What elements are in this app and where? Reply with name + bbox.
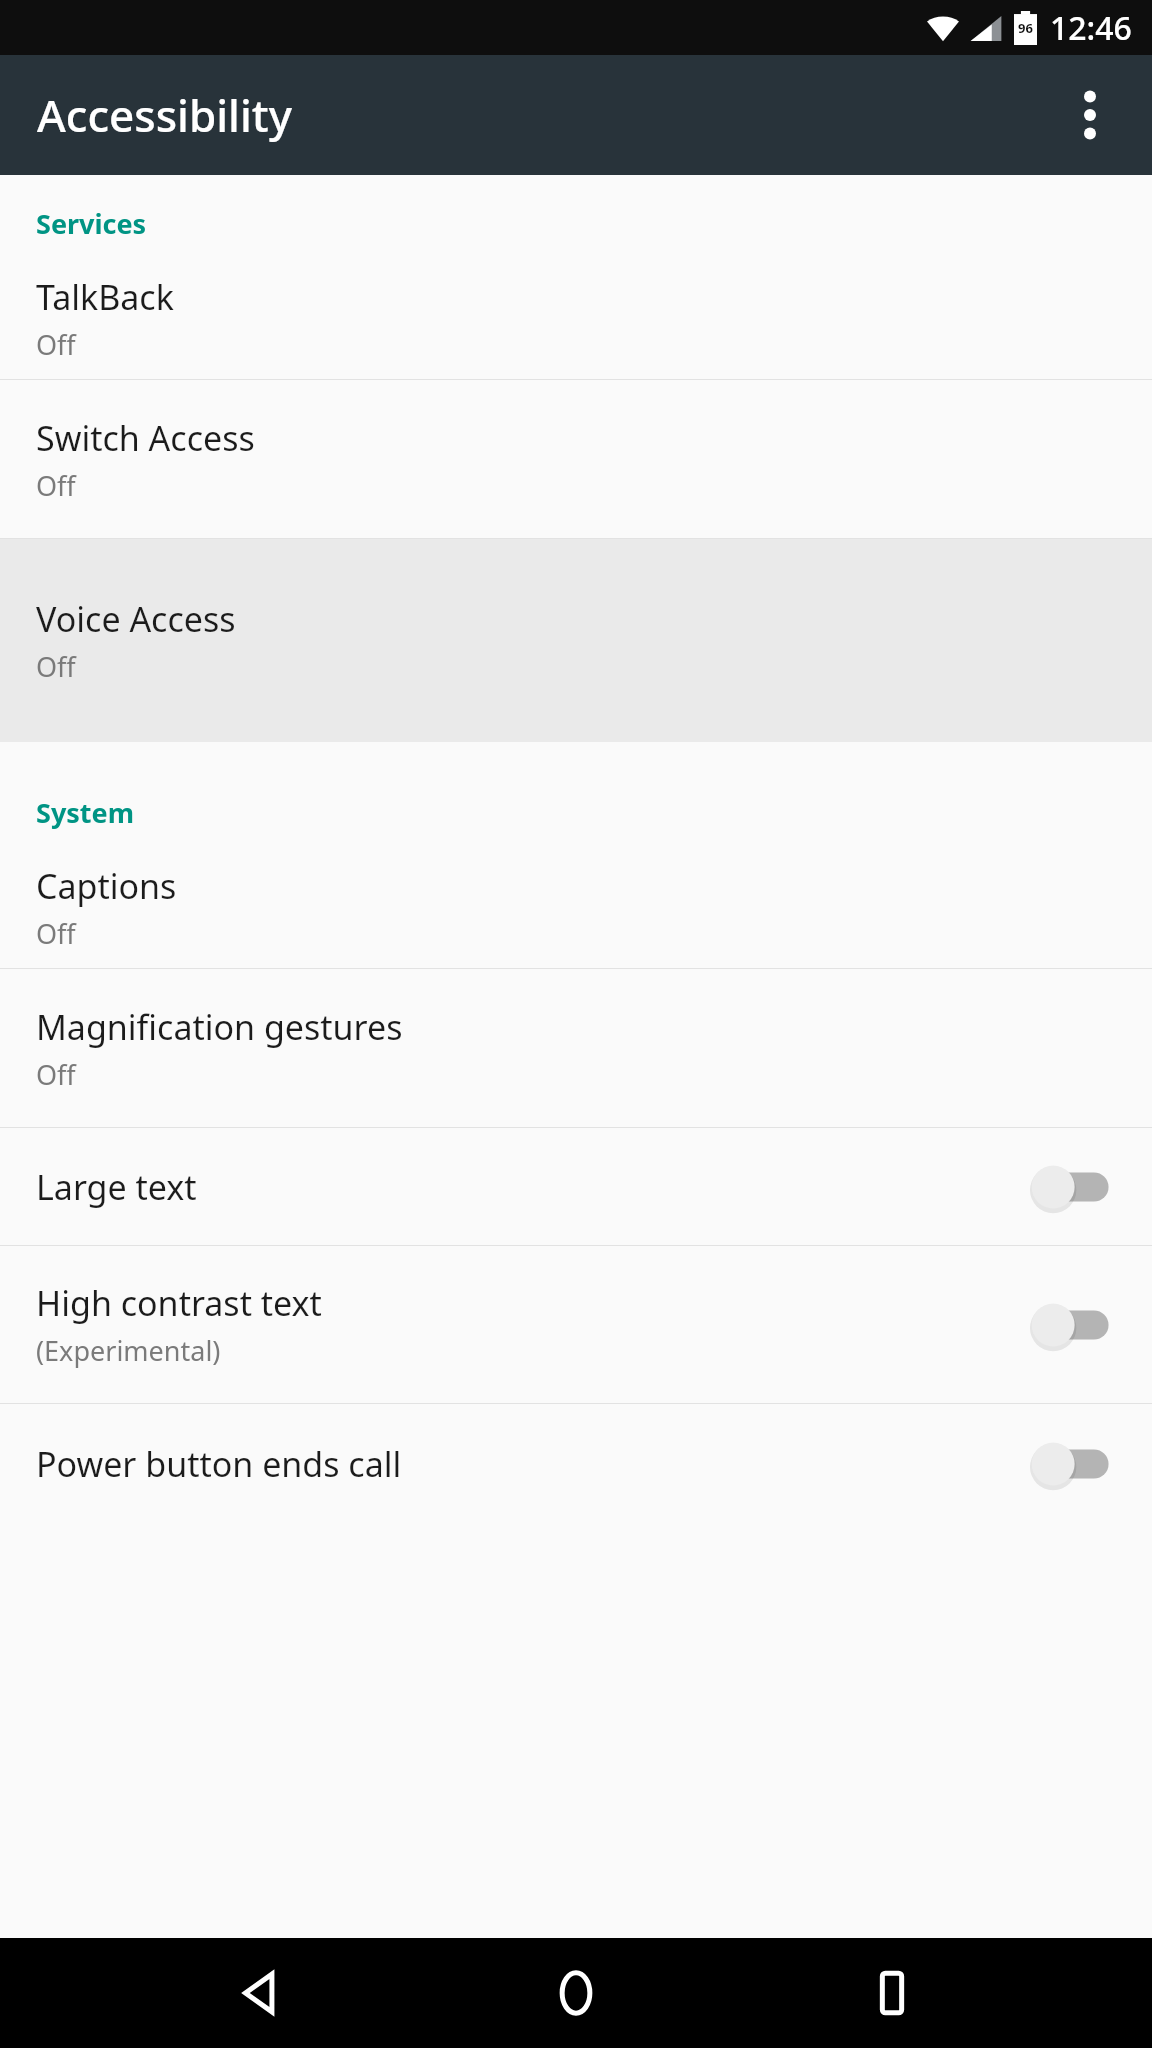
staticText: Large text [36,1164,197,1210]
button[interactable]: Switch Access [0,380,1152,538]
staticText: TalkBack [36,274,174,320]
staticText: Off [36,467,76,504]
button[interactable]: Magnification gestures [0,969,1152,1127]
staticText: Services [36,205,147,242]
staticText: Voice Access [36,596,236,642]
staticText: (Experimental) [36,1332,221,1369]
staticText: Accessibility [37,85,292,145]
staticText: 12:46 [1050,6,1132,50]
button[interactable]: More options [1054,79,1126,151]
button[interactable]: Voice Access [0,539,1152,742]
button[interactable]: High contrast text [0,1246,1152,1403]
button[interactable]: Recent apps [837,1938,947,2048]
button[interactable]: Power button ends call [0,1404,1152,1524]
staticText: Off [36,1056,76,1093]
button[interactable]: Home [521,1938,631,2048]
staticText: High contrast text [36,1280,322,1326]
staticText: Switch Access [36,415,255,461]
button[interactable]: Large text [0,1128,1152,1245]
staticText: System [36,794,135,831]
button[interactable]: Captions [0,847,1152,968]
staticText: Off [36,326,76,363]
staticText: Power button ends call [36,1441,402,1487]
staticText: Captions [36,863,177,909]
button[interactable]: TalkBack [0,258,1152,379]
button[interactable]: Back [206,1938,316,2048]
staticText: Magnification gestures [36,1004,403,1050]
staticText: 96 [1018,19,1033,37]
staticText: Off [36,648,76,685]
staticText: Off [36,915,76,952]
